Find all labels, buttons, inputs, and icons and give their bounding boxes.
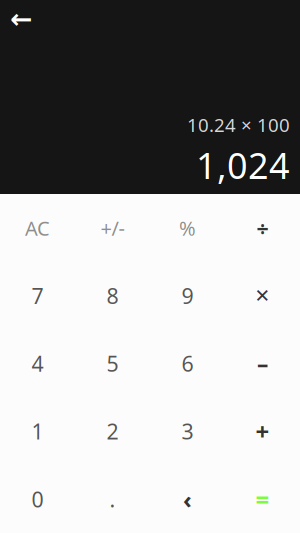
button[interactable]: 7 bbox=[0, 262, 75, 330]
staticText: + bbox=[255, 415, 269, 447]
staticText: 1 bbox=[31, 417, 43, 445]
button[interactable]: = bbox=[225, 465, 300, 533]
button[interactable]: + bbox=[225, 397, 300, 465]
button[interactable]: AC bbox=[0, 194, 75, 262]
staticText: 8 bbox=[106, 281, 118, 310]
staticText: – bbox=[257, 348, 268, 378]
button[interactable]: Back bbox=[4, 2, 38, 36]
button[interactable]: 3 bbox=[150, 397, 225, 465]
button[interactable]: ✕ bbox=[225, 262, 300, 330]
button[interactable]: +/- bbox=[75, 194, 150, 262]
button[interactable]: 5 bbox=[75, 330, 150, 397]
staticText: 3 bbox=[181, 417, 193, 445]
staticText: 7 bbox=[31, 281, 43, 310]
button[interactable]: 9 bbox=[150, 262, 225, 330]
button[interactable]: % bbox=[150, 194, 225, 262]
staticText: 1,024 bbox=[196, 141, 290, 189]
button[interactable]: – bbox=[225, 330, 300, 397]
button[interactable]: 1 bbox=[0, 397, 75, 465]
staticText: 2 bbox=[106, 417, 118, 445]
button[interactable]: . bbox=[75, 465, 150, 533]
staticText: +/- bbox=[100, 215, 124, 241]
staticText: ‹ bbox=[183, 483, 192, 515]
staticText: = bbox=[255, 483, 269, 515]
button[interactable]: 8 bbox=[75, 262, 150, 330]
staticText: ← bbox=[10, 4, 32, 34]
button[interactable]: 6 bbox=[150, 330, 225, 397]
staticText: 5 bbox=[106, 349, 118, 378]
button[interactable]: 0 bbox=[0, 465, 75, 533]
staticText: 10.24 × 100 bbox=[187, 112, 290, 137]
staticText: AC bbox=[25, 215, 50, 241]
button[interactable]: 4 bbox=[0, 330, 75, 397]
button[interactable]: ‹ bbox=[150, 465, 225, 533]
staticText: 0 bbox=[31, 485, 43, 513]
staticText: % bbox=[179, 215, 196, 241]
button[interactable]: 2 bbox=[75, 397, 150, 465]
staticText: ✕ bbox=[254, 285, 270, 306]
staticText: ÷ bbox=[256, 214, 268, 242]
staticText: . bbox=[109, 485, 115, 513]
staticText: 9 bbox=[181, 281, 193, 310]
staticText: 4 bbox=[31, 349, 43, 378]
button[interactable]: ÷ bbox=[225, 194, 300, 262]
staticText: 6 bbox=[181, 349, 193, 378]
